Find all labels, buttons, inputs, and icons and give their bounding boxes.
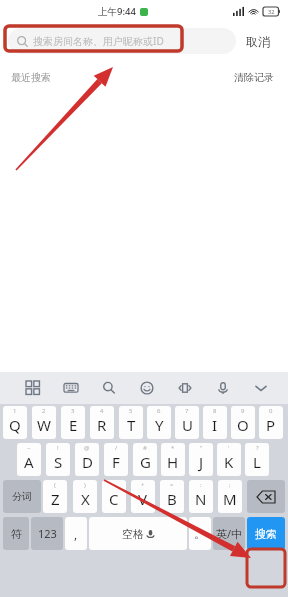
staticText: J bbox=[199, 452, 204, 472]
button[interactable]: 搜索 bbox=[247, 517, 285, 550]
staticText: O bbox=[237, 415, 249, 435]
button[interactable]: Search bbox=[98, 377, 120, 399]
button[interactable]: 取消 bbox=[236, 30, 280, 53]
button[interactable]: 清除记录 bbox=[231, 68, 277, 87]
staticText: R bbox=[97, 415, 107, 435]
button[interactable]: : bbox=[189, 480, 213, 513]
staticText: 搜索 bbox=[255, 527, 277, 541]
button[interactable]: 2 bbox=[32, 406, 56, 439]
staticText: ' bbox=[228, 444, 230, 452]
button[interactable]: ! bbox=[46, 443, 70, 476]
staticText: T bbox=[127, 415, 136, 435]
staticText: 6 bbox=[157, 407, 161, 415]
button[interactable]: # bbox=[133, 443, 157, 476]
staticText: X bbox=[81, 489, 90, 509]
staticText: ~ bbox=[27, 444, 31, 452]
button[interactable]: 4 bbox=[90, 406, 114, 439]
button[interactable]: = bbox=[160, 480, 184, 513]
button[interactable]: 5 bbox=[119, 406, 143, 439]
staticText: K bbox=[224, 452, 234, 472]
staticText: 3 bbox=[71, 407, 75, 415]
staticText: 8 bbox=[213, 407, 217, 415]
staticText: 分词 bbox=[12, 490, 32, 503]
staticText: 上午9:44 bbox=[98, 5, 136, 18]
button[interactable]: - bbox=[102, 480, 126, 513]
staticText: V bbox=[138, 489, 148, 509]
staticText: L bbox=[253, 452, 261, 472]
button[interactable]: 7 bbox=[175, 406, 199, 439]
button[interactable]: 3 bbox=[61, 406, 85, 439]
button[interactable]: + bbox=[131, 480, 155, 513]
staticText: 清除记录 bbox=[234, 71, 274, 84]
button[interactable]: 搜索房间名称、用户昵称或ID bbox=[8, 28, 236, 54]
button[interactable]: 6 bbox=[147, 406, 171, 439]
button[interactable]: 8 bbox=[203, 406, 227, 439]
button[interactable]: 9 bbox=[231, 406, 255, 439]
staticText: = bbox=[170, 481, 174, 489]
button[interactable]: 空格 bbox=[89, 517, 187, 550]
button[interactable]: @ bbox=[75, 443, 99, 476]
staticText: 0 bbox=[269, 407, 273, 415]
staticText: 9 bbox=[241, 407, 245, 415]
button[interactable]: Backspace bbox=[247, 480, 285, 513]
staticText: + bbox=[141, 481, 145, 489]
button[interactable]: , bbox=[65, 517, 87, 550]
staticText: W bbox=[37, 415, 51, 435]
staticText: @ bbox=[84, 444, 90, 452]
button[interactable]: Keyboard bbox=[60, 377, 82, 399]
staticText: N bbox=[195, 489, 207, 509]
button[interactable]: Grid bbox=[22, 377, 44, 399]
button[interactable]: ? bbox=[245, 443, 269, 476]
button[interactable]: Voice input bbox=[212, 377, 234, 399]
staticText: 7 bbox=[185, 407, 189, 415]
staticText: # bbox=[143, 444, 147, 452]
staticText: 1 bbox=[13, 407, 17, 415]
staticText: 4 bbox=[100, 407, 104, 415]
staticText: ? bbox=[256, 444, 259, 452]
button[interactable]: ( bbox=[43, 480, 67, 513]
button[interactable]: ) bbox=[73, 480, 97, 513]
staticText: ; bbox=[229, 481, 231, 489]
staticText: Q bbox=[9, 415, 21, 435]
staticText: C bbox=[109, 489, 119, 509]
staticText: U bbox=[182, 415, 193, 435]
button[interactable]: " bbox=[189, 443, 213, 476]
staticText: 2 bbox=[42, 407, 46, 415]
staticText: D bbox=[82, 452, 93, 472]
staticText: I bbox=[212, 415, 218, 435]
button[interactable]: / bbox=[104, 443, 128, 476]
staticText: H bbox=[167, 452, 179, 472]
staticText: " bbox=[200, 444, 203, 452]
staticText: F bbox=[112, 452, 120, 472]
staticText: P bbox=[266, 415, 276, 435]
staticText: ) bbox=[84, 481, 86, 489]
staticText: ! bbox=[57, 444, 59, 452]
button[interactable]: 符 bbox=[3, 517, 29, 550]
button[interactable]: 分词 bbox=[3, 480, 41, 513]
staticText: - bbox=[113, 481, 115, 489]
button[interactable]: Text cursor bbox=[174, 377, 196, 399]
button[interactable]: 英/中 bbox=[213, 517, 245, 550]
staticText: 取消 bbox=[246, 34, 270, 49]
staticText: Z bbox=[51, 489, 60, 509]
staticText: M bbox=[223, 489, 237, 509]
staticText: B bbox=[167, 489, 177, 509]
staticText: * bbox=[171, 444, 175, 452]
staticText: 。 bbox=[194, 526, 206, 541]
staticText: 123 bbox=[38, 526, 57, 541]
button[interactable]: Emoji bbox=[136, 377, 158, 399]
staticText: Y bbox=[155, 415, 164, 435]
button[interactable]: ' bbox=[217, 443, 241, 476]
button[interactable]: ~ bbox=[17, 443, 41, 476]
button[interactable]: 1 bbox=[3, 406, 27, 439]
staticText: A bbox=[24, 452, 34, 472]
staticText: / bbox=[115, 444, 118, 452]
button[interactable]: 。 bbox=[189, 517, 211, 550]
button[interactable]: 123 bbox=[31, 517, 63, 550]
button[interactable]: 0 bbox=[259, 406, 283, 439]
staticText: G bbox=[140, 452, 151, 472]
button[interactable]: Hide keyboard bbox=[250, 377, 272, 399]
button[interactable]: * bbox=[161, 443, 185, 476]
button[interactable]: ; bbox=[218, 480, 242, 513]
staticText: : bbox=[200, 481, 202, 489]
